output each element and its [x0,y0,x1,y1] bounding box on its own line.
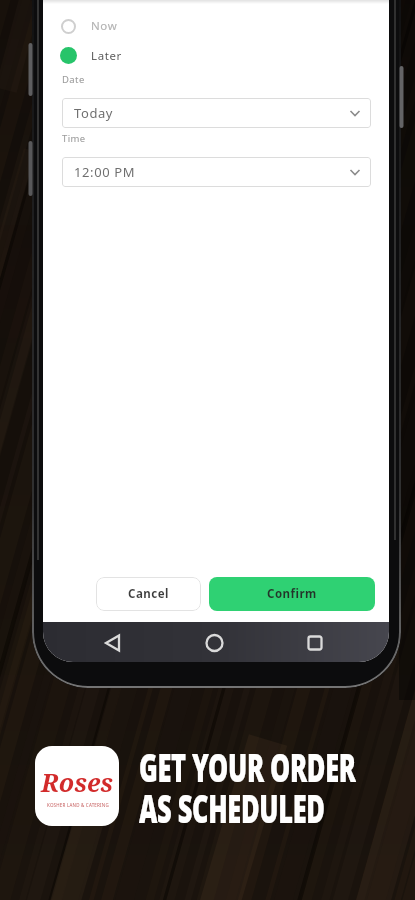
button[interactable]: Cancel [96,577,201,611]
staticText: GET YOUR ORDER [139,741,356,782]
staticText: Time [62,132,86,145]
staticText: 12:00 PM [74,163,136,181]
staticText: KOSHER LAND & CATERING [47,802,109,808]
staticText: Confirm [267,586,317,602]
button[interactable]: Later [60,47,122,64]
button[interactable]: 12:00 PM [62,157,371,187]
button[interactable]: Roses [35,746,119,826]
staticText: Later [91,48,122,64]
staticText: AS SCHEDULED [139,782,325,823]
staticText: Cancel [128,586,169,602]
button[interactable]: Confirm [209,577,375,611]
staticText: Roses [41,765,114,799]
staticText: Today [74,104,114,122]
button[interactable]: Now [61,18,118,34]
staticText: Date [62,73,85,86]
staticText: Now [91,18,118,34]
button[interactable]: Today [62,98,371,128]
